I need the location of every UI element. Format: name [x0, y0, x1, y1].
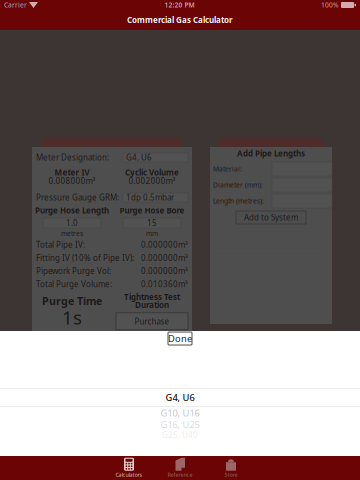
staticText: Done: [168, 332, 192, 345]
staticText: Pipework Purge Vol:: [36, 266, 111, 276]
staticText: 0.000000m³: [141, 266, 188, 276]
staticText: 1.0: [66, 218, 78, 228]
staticText: Duration: [135, 299, 169, 310]
staticText: 1s: [62, 305, 82, 330]
staticText: G4, U6: [165, 391, 194, 404]
staticText: Fitting IV (10% of Pipe IV):: [36, 252, 134, 263]
staticText: Reference: [167, 471, 192, 478]
staticText: Total Purge Volume:: [36, 279, 112, 289]
staticText: G16, U25: [160, 418, 199, 431]
staticText: 0.000000m³: [141, 252, 188, 263]
staticText: Material:: [213, 165, 242, 173]
staticText: Add Pipe Lengths: [237, 148, 305, 159]
staticText: Add to System: [244, 212, 298, 223]
staticText: Purge Time: [42, 294, 102, 308]
staticText: metres: [61, 229, 83, 238]
staticText: 1dp 0.5mbar: [126, 192, 174, 203]
staticText: Pressure Gauge GRM:: [36, 192, 119, 203]
staticText: Commercial Gas Calculator: [127, 15, 233, 25]
button[interactable]: Store: [205, 456, 256, 480]
staticText: Cyclic Volume: [125, 167, 179, 178]
staticText: Carrier: [4, 1, 27, 9]
button[interactable]: Add to System: [236, 211, 306, 224]
staticText: 0.010360m³: [141, 279, 188, 289]
staticText: G25, U40: [162, 430, 198, 440]
staticText: 15: [147, 218, 157, 228]
staticText: Diameter (mm):: [213, 181, 263, 189]
staticText: G4, U6: [126, 152, 152, 163]
button[interactable]: Calculators: [103, 456, 154, 480]
staticText: 0.002000m³: [128, 176, 175, 186]
staticText: Purge Hose Bore: [119, 205, 184, 216]
staticText: Purchase: [134, 316, 169, 327]
staticText: Calculators: [115, 471, 142, 478]
staticText: 0.008000m³: [48, 176, 95, 186]
button[interactable]: Done: [168, 332, 192, 345]
staticText: Length (metres):: [213, 197, 264, 205]
staticText: Store: [224, 471, 237, 478]
staticText: 0.000000m³: [141, 239, 188, 250]
staticText: Meter IV: [54, 167, 89, 178]
staticText: mm: [146, 229, 158, 238]
staticText: Total Pipe IV:: [36, 239, 85, 250]
staticText: Tightness Test: [124, 291, 180, 302]
staticText: Purge Hose Length: [35, 205, 109, 216]
staticText: Meter Designation:: [36, 152, 109, 163]
staticText: 100%: [321, 1, 339, 9]
staticText: G10, U16: [160, 407, 199, 419]
button[interactable]: Purchase: [116, 313, 188, 330]
staticText: 12:20 PM: [164, 1, 194, 9]
button[interactable]: Reference: [154, 456, 205, 480]
